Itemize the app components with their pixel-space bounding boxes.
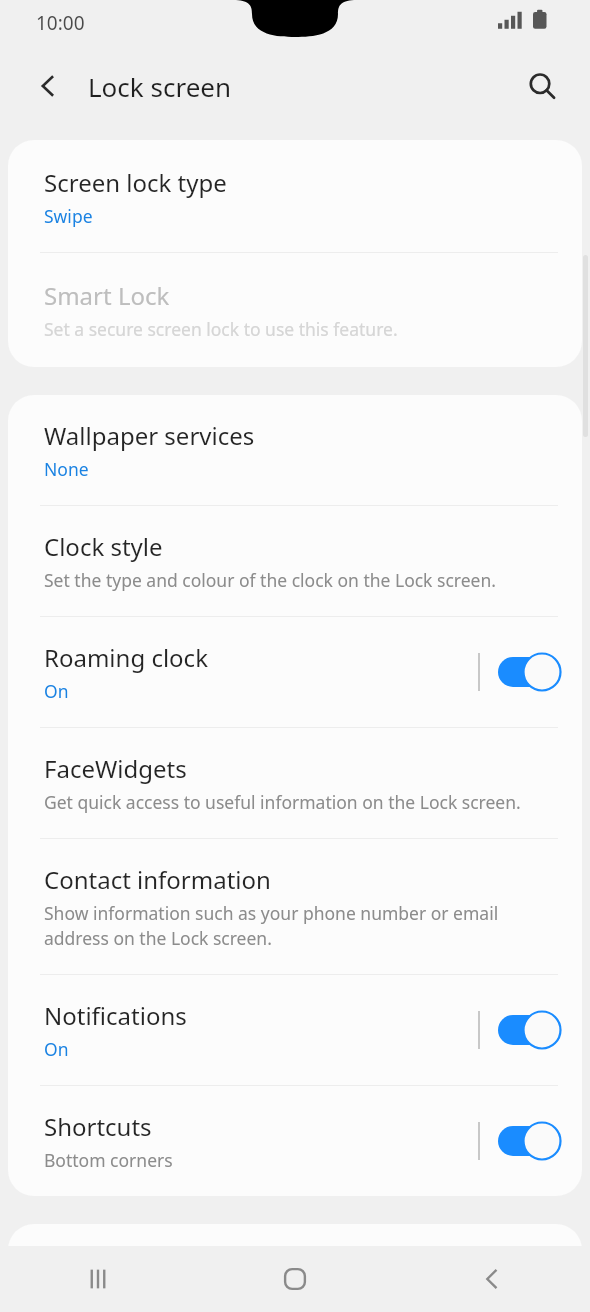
staticText: Clock style <box>44 530 163 563</box>
staticText: Get quick access to useful information o… <box>44 790 521 814</box>
staticText: 10:00 <box>36 10 85 36</box>
staticText: Set a secure screen lock to use this fea… <box>44 317 398 341</box>
staticText: Set the type and colour of the clock on … <box>44 568 496 592</box>
staticText: Roaming clock <box>44 641 208 674</box>
staticText: Swipe <box>44 204 93 228</box>
button[interactable]: Back <box>393 1246 590 1312</box>
button[interactable]: Smart Lock <box>8 253 582 367</box>
button[interactable]: Back <box>22 60 74 112</box>
staticText: Shortcuts <box>44 1110 152 1143</box>
staticText: Wallpaper services <box>44 419 255 452</box>
staticText: Lock screen <box>88 69 232 104</box>
button[interactable]: Contact information <box>8 839 582 974</box>
button[interactable]: Screen lock type <box>8 140 582 252</box>
button[interactable]: Roaming clock <box>8 617 582 727</box>
button[interactable]: Recents <box>0 1246 196 1312</box>
staticText: Notifications <box>44 999 187 1032</box>
button[interactable]: Shortcuts toggle <box>498 1118 560 1164</box>
staticText: Contact information <box>44 863 271 896</box>
staticText: On <box>44 1037 69 1061</box>
staticText: Screen lock type <box>44 166 227 199</box>
staticText: Smart Lock <box>44 279 170 312</box>
staticText: FaceWidgets <box>44 752 187 785</box>
button[interactable]: Notifications toggle <box>498 1007 560 1053</box>
staticText: Bottom corners <box>44 1148 173 1172</box>
button[interactable]: Clock style <box>8 506 582 616</box>
button[interactable]: Notifications <box>8 975 582 1085</box>
button[interactable]: FaceWidgets <box>8 728 582 838</box>
button[interactable]: Shortcuts <box>8 1086 582 1196</box>
staticText: On <box>44 679 69 703</box>
staticText: Show information such as your phone numb… <box>44 901 538 950</box>
button[interactable]: Search <box>516 60 568 112</box>
button[interactable] <box>8 1224 582 1264</box>
button[interactable]: Home <box>196 1246 393 1312</box>
staticText: None <box>44 457 89 481</box>
button[interactable]: Wallpaper services <box>8 395 582 505</box>
button[interactable]: Roaming clock toggle <box>498 649 560 695</box>
